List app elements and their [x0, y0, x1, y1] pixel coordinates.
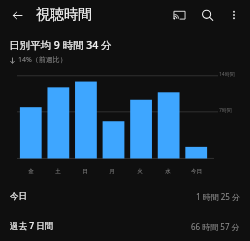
- staticText: 水: [165, 168, 171, 175]
- button[interactable]: 過去 7 日間: [0, 211, 250, 241]
- staticText: 14%（前週比）: [18, 55, 67, 65]
- staticText: 火: [137, 168, 143, 175]
- staticText: 66 時間 57 分: [191, 221, 240, 232]
- staticText: 日別平均 9 時間 34 分: [9, 38, 112, 52]
- staticText: 金: [28, 168, 34, 175]
- button[interactable]: Back: [4, 2, 30, 28]
- staticText: 視聴時間: [36, 6, 92, 24]
- staticText: 7時間: [219, 107, 232, 114]
- button[interactable]: Search: [193, 1, 221, 29]
- staticText: 14時間: [219, 71, 235, 78]
- button[interactable]: 今日: [0, 181, 250, 211]
- staticText: 今日: [10, 191, 27, 202]
- button[interactable]: Cast: [165, 1, 193, 29]
- staticText: 過去 7 日間: [10, 220, 54, 232]
- staticText: 日: [82, 168, 88, 175]
- staticText: 今日: [191, 168, 202, 175]
- staticText: 月: [109, 168, 115, 175]
- staticText: 1 時間 25 分: [196, 191, 240, 202]
- button[interactable]: More options: [221, 2, 247, 28]
- staticText: 土: [55, 168, 61, 175]
